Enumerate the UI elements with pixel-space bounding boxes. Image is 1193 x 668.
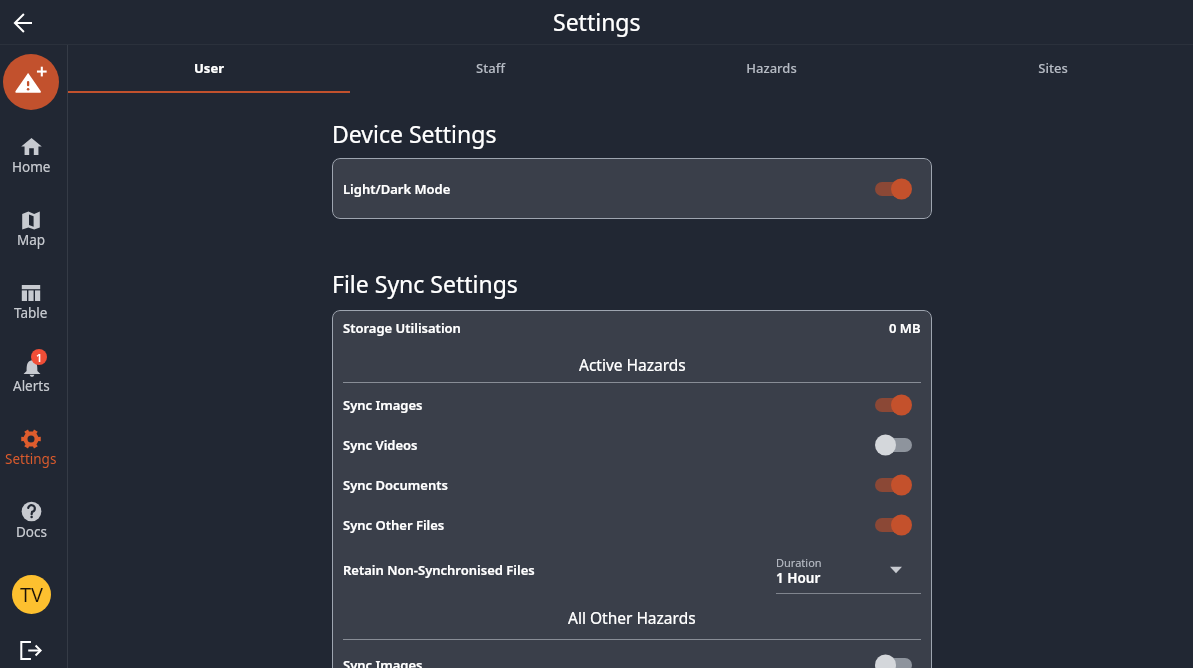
button[interactable]: Duration xyxy=(776,545,921,595)
staticText: Home xyxy=(12,158,51,176)
staticText: 1 xyxy=(36,350,43,365)
staticText: 0 MB xyxy=(889,319,921,337)
button[interactable]: On xyxy=(875,393,912,417)
button[interactable]: TV xyxy=(12,575,51,614)
button[interactable]: Sync Images xyxy=(343,645,921,668)
button[interactable]: Staff xyxy=(350,45,631,93)
button[interactable]: Sync Images xyxy=(343,385,921,425)
staticText: Staff xyxy=(476,59,505,77)
button[interactable]: Home xyxy=(0,136,62,180)
staticText: TV xyxy=(20,581,44,608)
button[interactable]: Light/Dark Mode xyxy=(343,158,921,219)
button[interactable]: Off xyxy=(875,433,912,457)
button[interactable]: On xyxy=(875,177,912,201)
button[interactable]: Back xyxy=(5,5,41,41)
staticText: Hazards xyxy=(746,59,797,77)
button[interactable]: Hazards xyxy=(631,45,912,93)
staticText: Light/Dark Mode xyxy=(343,180,451,198)
staticText: Settings xyxy=(553,6,641,37)
staticText: Sync Documents xyxy=(343,476,448,494)
button[interactable]: On xyxy=(875,473,912,497)
button[interactable]: Off xyxy=(875,653,912,668)
button[interactable]: On xyxy=(875,513,912,537)
staticText: Sync Images xyxy=(343,656,423,668)
staticText: Sites xyxy=(1038,59,1068,77)
staticText: Duration xyxy=(776,555,822,570)
staticText: Alerts xyxy=(13,377,50,395)
button[interactable]: Settings xyxy=(0,428,62,472)
staticText: Sync Videos xyxy=(343,436,418,454)
button[interactable]: User xyxy=(68,45,350,93)
button[interactable]: Table xyxy=(0,282,62,326)
button[interactable]: Log out xyxy=(14,634,46,666)
button[interactable]: 1 xyxy=(0,355,62,399)
staticText: Sync Other Files xyxy=(343,516,445,534)
staticText: Active Hazards xyxy=(579,354,686,375)
staticText: Table xyxy=(14,304,48,322)
staticText: Retain Non-Synchronised Files xyxy=(343,561,535,579)
staticText: Storage Utilisation xyxy=(343,319,461,337)
staticText: Settings xyxy=(5,450,57,468)
staticText: Map xyxy=(17,231,46,249)
staticText: User xyxy=(194,59,224,77)
button[interactable]: Sites xyxy=(912,45,1193,93)
button[interactable]: Docs xyxy=(0,501,62,545)
staticText: 1 Hour xyxy=(776,569,821,587)
button[interactable]: Sync Videos xyxy=(343,425,921,465)
staticText: File Sync Settings xyxy=(332,268,518,299)
button[interactable]: Map xyxy=(0,209,62,253)
staticText: Device Settings xyxy=(332,118,497,149)
button[interactable]: Sync Other Files xyxy=(343,505,921,545)
button[interactable]: Add hazard xyxy=(3,54,59,110)
button[interactable]: Sync Documents xyxy=(343,465,921,505)
staticText: Sync Images xyxy=(343,396,423,414)
staticText: Docs xyxy=(16,523,47,541)
staticText: All Other Hazards xyxy=(568,607,696,628)
